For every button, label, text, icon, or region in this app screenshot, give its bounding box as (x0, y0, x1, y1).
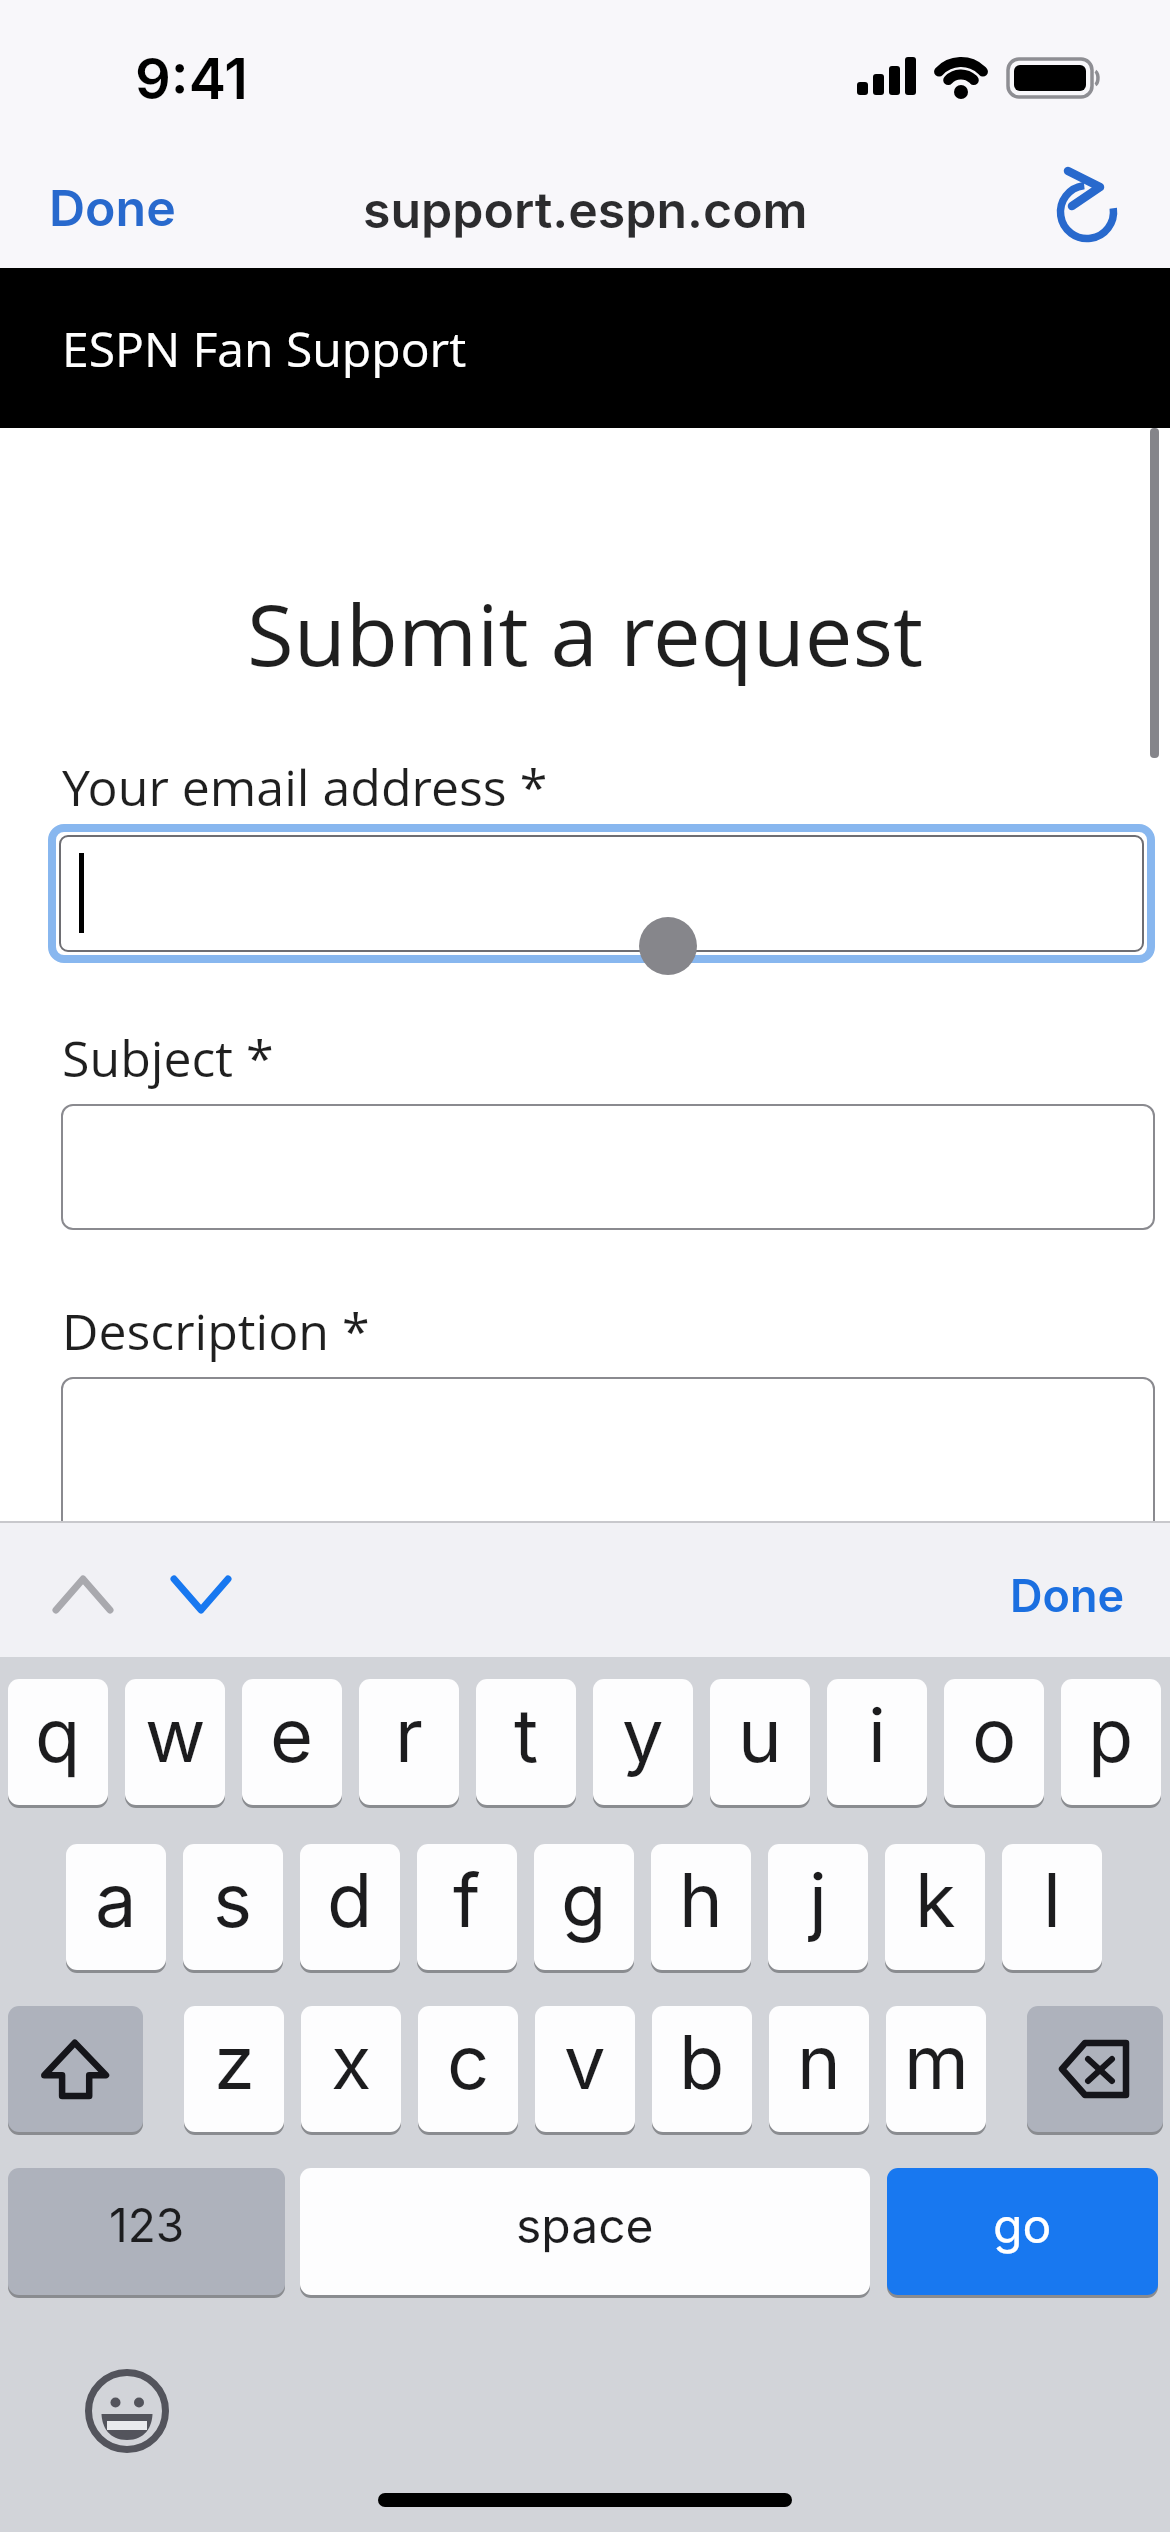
staticText: 9:41 (135, 45, 248, 105)
button[interactable]: w (125, 1679, 225, 1805)
staticText: e (270, 1690, 314, 1780)
staticText: q (35, 1690, 81, 1780)
button[interactable]: a (66, 1844, 166, 1970)
staticText: n (797, 2017, 841, 2107)
button[interactable]: b (652, 2006, 752, 2132)
button[interactable]: y (593, 1679, 693, 1805)
button[interactable]: s (183, 1844, 283, 1970)
button[interactable] (48, 824, 1155, 963)
staticText: b (679, 2017, 725, 2107)
staticText: 123 (109, 2197, 185, 2253)
staticText: m (904, 2017, 969, 2107)
staticText: ESPN Fan Support (62, 316, 467, 381)
staticText: Subject * (62, 1024, 274, 1092)
staticText: Submit a request (247, 575, 924, 691)
button[interactable]: d (300, 1844, 400, 1970)
staticText: i (868, 1690, 886, 1780)
staticText: Your email address * (62, 753, 548, 821)
staticText: Description * (62, 1297, 370, 1365)
button[interactable]: k (885, 1844, 985, 1970)
staticText: a (95, 1855, 137, 1945)
staticText: u (738, 1690, 782, 1780)
staticText: r (395, 1690, 423, 1780)
staticText: l (1043, 1855, 1061, 1945)
button[interactable]: Done (987, 1565, 1147, 1625)
staticText: y (622, 1690, 664, 1780)
staticText: x (331, 2017, 372, 2107)
button[interactable]: r (359, 1679, 459, 1805)
button[interactable]: go (887, 2168, 1158, 2295)
button[interactable]: n (769, 2006, 869, 2132)
staticText: j (809, 1855, 827, 1945)
staticText: z (214, 2017, 255, 2107)
button[interactable]: space (300, 2168, 870, 2295)
staticText: p (1088, 1690, 1134, 1780)
button[interactable]: x (301, 2006, 401, 2132)
button[interactable] (168, 1565, 238, 1625)
button[interactable] (8, 2006, 143, 2132)
staticText: g (561, 1855, 607, 1945)
button[interactable] (85, 2369, 169, 2453)
staticText: Done (49, 178, 176, 238)
button[interactable]: q (8, 1679, 108, 1805)
staticText: d (327, 1855, 373, 1945)
staticText: Done (1010, 1568, 1125, 1622)
button[interactable]: c (418, 2006, 518, 2132)
staticText: t (514, 1690, 539, 1780)
button[interactable]: t (476, 1679, 576, 1805)
button[interactable]: h (651, 1844, 751, 1970)
button[interactable]: m (886, 2006, 986, 2132)
button[interactable]: 123 (8, 2168, 285, 2295)
button[interactable]: f (417, 1844, 517, 1970)
button[interactable] (61, 1104, 1155, 1230)
button[interactable]: e (242, 1679, 342, 1805)
staticText: k (915, 1855, 956, 1945)
button[interactable] (50, 1565, 120, 1625)
button[interactable] (1027, 2006, 1163, 2132)
staticText: w (145, 1690, 206, 1780)
button[interactable]: v (535, 2006, 635, 2132)
button[interactable]: p (1061, 1679, 1161, 1805)
button[interactable]: u (710, 1679, 810, 1805)
staticText: o (972, 1690, 1017, 1780)
staticText: s (213, 1855, 253, 1945)
staticText: c (447, 2017, 490, 2107)
button[interactable]: l (1002, 1844, 1102, 1970)
staticText: go (993, 2196, 1052, 2254)
staticText: v (564, 2017, 606, 2107)
button[interactable]: Done (40, 178, 185, 238)
button[interactable]: i (827, 1679, 927, 1805)
button[interactable]: z (184, 2006, 284, 2132)
staticText: support.espn.com (363, 180, 808, 240)
staticText: h (679, 1855, 723, 1945)
staticText: f (453, 1855, 481, 1945)
button[interactable]: o (944, 1679, 1044, 1805)
staticText: space (516, 2196, 654, 2254)
button[interactable]: g (534, 1844, 634, 1970)
button[interactable] (1040, 160, 1140, 260)
button[interactable] (61, 1377, 1155, 1537)
button[interactable]: j (768, 1844, 868, 1970)
